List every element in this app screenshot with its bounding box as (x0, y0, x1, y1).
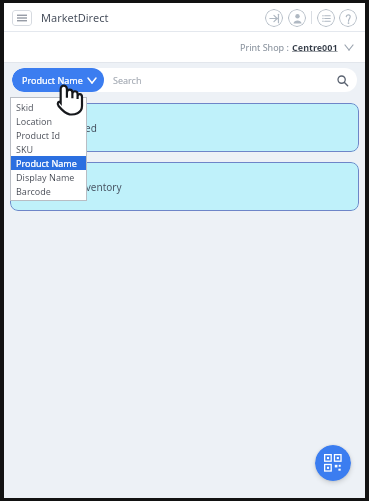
button[interactable]: Receive Inventory (10, 162, 359, 211)
button[interactable]: Display Name (10, 170, 87, 184)
button[interactable]: To Be Picked (10, 103, 359, 152)
button[interactable]: Menu (12, 10, 32, 26)
button[interactable]: Account (288, 9, 306, 27)
staticText: Barcode (16, 185, 51, 197)
button[interactable]: Product Id (10, 128, 87, 142)
button[interactable]: Scan barcode (315, 445, 351, 481)
staticText: Centre001 (292, 41, 338, 53)
button[interactable]: List (317, 9, 335, 27)
staticText: Search (113, 74, 142, 86)
button[interactable]: SKU (10, 142, 87, 156)
staticText: Skid (16, 101, 34, 113)
staticText: SKU (16, 143, 34, 155)
button[interactable]: Print Shop : (238, 37, 355, 57)
button[interactable]: Skid (10, 100, 87, 114)
button[interactable]: Search (331, 69, 353, 91)
button[interactable]: Location (10, 114, 87, 128)
staticText: MarketDirect (41, 10, 109, 25)
button[interactable]: Help (339, 9, 357, 27)
button[interactable]: Product Name (10, 156, 87, 170)
staticText: Location (16, 115, 53, 127)
staticText: Receive Inventory (38, 180, 122, 194)
staticText: To Be Picked (38, 121, 97, 135)
staticText: Product Name (22, 74, 83, 86)
staticText: Print Shop : (240, 41, 292, 53)
button[interactable]: Sign in (265, 9, 283, 27)
button[interactable]: Product Name (12, 68, 104, 92)
staticText: Product Name (16, 157, 77, 169)
button[interactable]: Barcode (10, 184, 87, 198)
staticText: Display Name (16, 171, 75, 183)
staticText: Product Id (16, 129, 61, 141)
